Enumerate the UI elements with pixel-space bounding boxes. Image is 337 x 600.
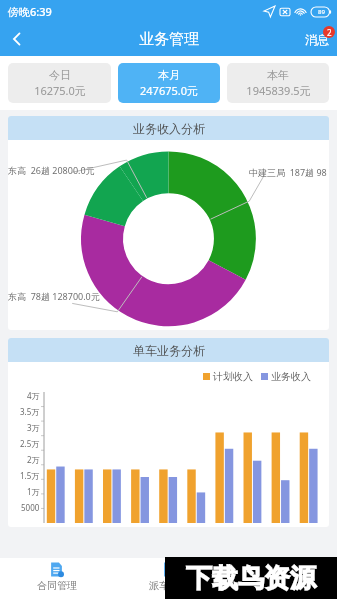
staticText: 本月 — [158, 68, 180, 82]
staticText: 中建三局 187趟 98 — [249, 166, 327, 178]
staticText: 业务收入分析 — [133, 121, 205, 136]
button[interactable]: 本月 — [118, 63, 220, 103]
staticText: 2万 — [27, 454, 40, 465]
staticText: 合同管理 — [37, 579, 77, 592]
staticText: 1945839.5元 — [246, 83, 311, 98]
staticText: 单车业务分析 — [133, 343, 205, 358]
staticText: 本年 — [267, 68, 289, 82]
staticText: 247675.0元 — [140, 83, 198, 98]
staticText: 计划收入 — [213, 370, 253, 383]
staticText: 业务收入 — [271, 370, 311, 383]
staticText: 东高 78趟 128700.0元 — [8, 290, 100, 302]
staticText: 3万 — [27, 422, 40, 433]
button[interactable]: 今日 — [8, 63, 111, 103]
button[interactable]: 派车管理 — [113, 558, 225, 600]
staticText: 消息 — [305, 32, 329, 47]
staticText: 业务管理 — [261, 579, 301, 592]
staticText: 1.5万 — [20, 470, 40, 481]
staticText: 下载鸟资源 — [186, 562, 316, 595]
button[interactable]: 业务管理 — [225, 558, 337, 600]
staticText: 89 — [318, 8, 325, 16]
staticText: 1万 — [27, 486, 40, 497]
button[interactable]: 合同管理 — [0, 558, 113, 600]
staticText: 2 — [327, 27, 332, 38]
staticText: 2.5万 — [20, 438, 40, 449]
staticText: 傍晚6:39 — [8, 4, 52, 19]
button[interactable]: 本年 — [227, 63, 329, 103]
staticText: 派车管理 — [149, 579, 189, 592]
staticText: 4万 — [27, 390, 40, 401]
staticText: 业务管理 — [139, 30, 199, 49]
button[interactable]: Back — [0, 22, 34, 56]
button[interactable]: 消息 — [297, 32, 337, 47]
staticText: 今日 — [49, 68, 71, 82]
staticText: 3.5万 — [20, 406, 40, 417]
staticText: 东高 26趟 20800.0元 — [8, 164, 95, 176]
staticText: 16275.0元 — [34, 83, 86, 98]
staticText: 5000 — [21, 502, 40, 513]
